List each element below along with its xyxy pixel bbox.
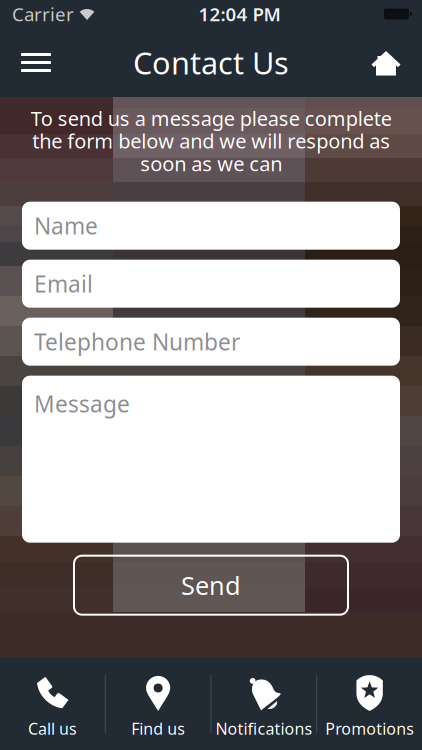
staticText: Telephone Number bbox=[34, 327, 240, 357]
staticText: Message bbox=[34, 389, 130, 419]
button[interactable]: Promotions bbox=[317, 658, 422, 750]
staticText: Call us bbox=[28, 718, 77, 739]
button[interactable]: Call us bbox=[0, 658, 105, 750]
button[interactable]: Find us bbox=[106, 658, 211, 750]
button[interactable]: Email bbox=[22, 260, 400, 308]
staticText: Send bbox=[181, 568, 241, 602]
staticText: Find us bbox=[131, 718, 185, 739]
button[interactable]: Telephone Number bbox=[22, 318, 400, 366]
staticText: Promotions bbox=[325, 718, 414, 739]
button[interactable]: Notifications bbox=[211, 658, 316, 750]
staticText: Name bbox=[34, 211, 98, 241]
button[interactable]: Message bbox=[22, 376, 400, 543]
staticText: Notifications bbox=[215, 718, 312, 739]
button[interactable]: Home bbox=[358, 28, 414, 97]
button[interactable]: Send bbox=[74, 556, 348, 615]
staticText: To send us a message please complete the… bbox=[30, 105, 391, 177]
button[interactable]: Menu bbox=[8, 28, 64, 97]
staticText: 12:04 PM bbox=[198, 2, 280, 26]
staticText: Carrier bbox=[12, 2, 74, 26]
button[interactable]: Name bbox=[22, 202, 400, 250]
staticText: Contact Us bbox=[133, 42, 289, 83]
staticText: Email bbox=[34, 269, 93, 299]
